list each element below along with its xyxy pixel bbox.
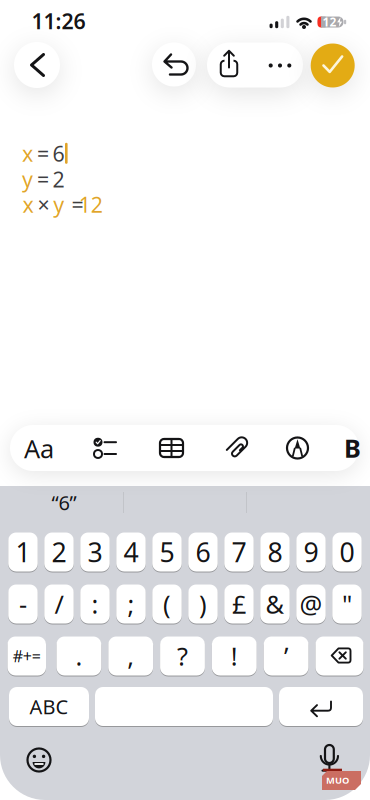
staticText: ) xyxy=(199,587,207,621)
button[interactable] xyxy=(95,686,273,726)
staticText: / xyxy=(54,587,63,621)
button[interactable]: Back xyxy=(14,42,60,88)
staticText: #+= xyxy=(13,645,41,667)
button[interactable]: More xyxy=(258,43,302,87)
button[interactable]: ! xyxy=(212,636,257,676)
staticText: = xyxy=(37,165,49,193)
button[interactable]: #+= xyxy=(7,636,46,676)
button[interactable]: Done xyxy=(311,43,355,87)
button[interactable]: @ xyxy=(296,584,326,624)
button[interactable]: Attach xyxy=(217,429,255,467)
button[interactable]: Undo xyxy=(152,42,196,86)
staticText: £ xyxy=(232,587,246,621)
button[interactable]: ) xyxy=(188,584,218,624)
button[interactable]: 4 xyxy=(116,532,146,572)
staticText: - xyxy=(19,587,27,621)
button[interactable]: 5 xyxy=(152,532,182,572)
staticText: 0 xyxy=(339,534,354,570)
staticText: 12 xyxy=(322,14,336,30)
button[interactable]: 3 xyxy=(80,532,110,572)
staticText: ( xyxy=(163,587,171,621)
button[interactable]: 9 xyxy=(296,532,326,572)
button[interactable]: Bold xyxy=(337,426,367,470)
staticText: 3 xyxy=(87,534,102,570)
button[interactable]: ( xyxy=(152,584,182,624)
button[interactable]: Dictation xyxy=(314,742,346,774)
staticText: ? xyxy=(177,639,188,673)
button[interactable]: 2 xyxy=(44,532,74,572)
button[interactable]: , xyxy=(108,636,153,676)
button[interactable]: . xyxy=(56,636,101,676)
staticText: × xyxy=(37,190,49,219)
button[interactable]: ’ xyxy=(264,636,308,676)
button[interactable]: ABC xyxy=(9,686,89,726)
staticText: 4 xyxy=(123,534,138,570)
staticText: ABC xyxy=(29,693,68,720)
button[interactable]: Checklist xyxy=(85,431,129,465)
staticText: 12 xyxy=(79,190,103,219)
button[interactable]: 6 xyxy=(188,532,218,572)
staticText: ; xyxy=(127,587,134,621)
staticText: 2 xyxy=(53,165,65,193)
staticText: 6 xyxy=(53,139,65,168)
button[interactable]: Delete xyxy=(315,636,363,676)
button[interactable]: ; xyxy=(116,584,146,624)
button[interactable]: Markup xyxy=(278,429,316,467)
staticText: x xyxy=(22,139,33,168)
button[interactable]: : xyxy=(80,584,110,624)
button[interactable]: & xyxy=(260,584,290,624)
staticText: = xyxy=(37,139,49,168)
staticText: “6” xyxy=(51,489,76,516)
button[interactable]: Share xyxy=(207,43,251,87)
staticText: 6 xyxy=(195,534,210,570)
staticText: 5 xyxy=(159,534,174,570)
button[interactable]: 7 xyxy=(224,532,254,572)
staticText: 2 xyxy=(51,534,66,570)
button[interactable]: " xyxy=(332,584,362,624)
staticText: . xyxy=(75,639,82,673)
staticText: & xyxy=(265,587,284,621)
staticText: 7 xyxy=(231,534,246,570)
staticText: @ xyxy=(299,587,322,621)
staticText: : xyxy=(91,587,98,621)
button[interactable]: Table xyxy=(149,429,193,466)
button[interactable]: - xyxy=(8,584,38,624)
staticText: ! xyxy=(231,639,238,673)
button[interactable]: / xyxy=(44,584,74,624)
staticText: y xyxy=(22,165,33,193)
button[interactable]: 8 xyxy=(260,532,290,572)
staticText: y xyxy=(53,190,64,219)
staticText: Aa xyxy=(24,432,54,465)
button[interactable]: ? xyxy=(160,636,205,676)
staticText: 1 xyxy=(15,534,30,570)
button[interactable]: 0 xyxy=(332,532,362,572)
staticText: = xyxy=(72,190,84,219)
button[interactable]: “6” xyxy=(6,487,122,517)
button[interactable]: 1 xyxy=(8,532,38,572)
button[interactable]: £ xyxy=(224,584,254,624)
staticText: 8 xyxy=(267,534,282,570)
staticText: B xyxy=(344,431,361,465)
button[interactable]: Format xyxy=(17,426,61,470)
staticText: , xyxy=(127,639,134,673)
staticText: " xyxy=(342,587,352,621)
staticText: MUO xyxy=(326,774,349,786)
staticText: x xyxy=(22,190,33,219)
staticText: ’ xyxy=(284,639,288,673)
staticText: 9 xyxy=(303,534,318,570)
button[interactable]: Return xyxy=(279,686,363,726)
button[interactable]: Emoji xyxy=(25,746,53,774)
staticText: 11:26 xyxy=(31,7,85,35)
